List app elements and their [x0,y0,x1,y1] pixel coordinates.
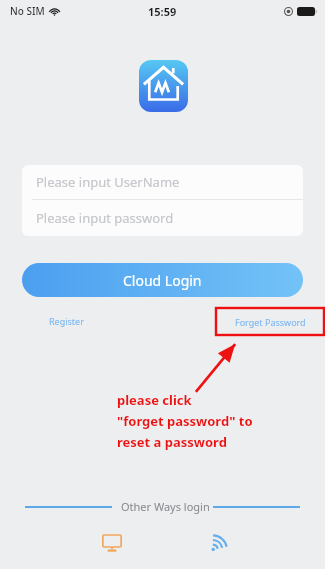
staticText: please click [117,391,192,409]
button[interactable]: Please input password [22,200,303,236]
staticText: "forget password" to [117,412,253,430]
staticText: Other Ways login [112,499,213,514]
staticText: Cloud Login [123,271,202,290]
staticText: Register [49,315,84,327]
staticText: 15:59 [148,4,177,19]
staticText: Forget Password [235,316,306,328]
staticText: Please input password [36,209,174,227]
button[interactable]: Login with WiFi [203,527,235,559]
staticText: Please input UserName [36,173,180,191]
staticText: No SIM [10,4,45,18]
button[interactable]: Cloud Login [22,263,303,297]
button[interactable]: Login with local device [96,527,128,559]
button[interactable]: Please input UserName [22,165,303,199]
button[interactable]: Forget Password [235,316,306,328]
button[interactable]: Register [48,313,84,329]
staticText: reset a password [117,433,227,451]
